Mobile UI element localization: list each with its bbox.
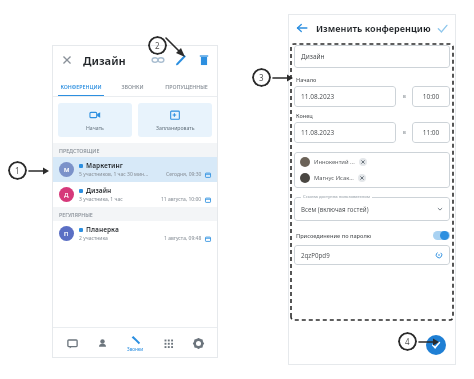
button[interactable]: Save	[436, 22, 449, 35]
button[interactable]: П	[59, 221, 211, 246]
staticText: Всем (включая гостей)	[301, 205, 369, 213]
button[interactable]: 11.08.2023	[294, 122, 396, 143]
button[interactable]: Звонки	[122, 335, 148, 352]
staticText: 2	[155, 40, 160, 51]
button[interactable]: Regenerate password	[435, 251, 443, 259]
staticText: 10:00	[412, 92, 450, 101]
staticText: Маркетинг	[86, 161, 123, 170]
staticText: КОНФЕРЕНЦИИ	[60, 83, 102, 90]
staticText: Дизайн	[83, 53, 126, 68]
staticText: РЕГУЛЯРНЫЕ	[59, 211, 93, 218]
button[interactable]: Дизайн	[294, 45, 450, 68]
staticText: ЗВОНКИ	[121, 83, 144, 90]
staticText: Д	[64, 191, 69, 199]
staticText: 11:00	[412, 128, 450, 137]
staticText: Изменить конференцию	[316, 22, 431, 34]
button[interactable]: Edit	[174, 53, 188, 67]
staticText: 2 участника	[79, 235, 108, 242]
button[interactable]: Confirm	[426, 335, 446, 355]
staticText: Начать	[86, 124, 104, 131]
staticText: в	[403, 129, 406, 136]
button[interactable]: Remove participant	[359, 158, 367, 166]
button[interactable]: Copy link	[151, 53, 165, 67]
button[interactable]: Settings	[187, 332, 209, 354]
button[interactable]: Back	[295, 21, 309, 35]
button[interactable]: 10:00	[412, 86, 450, 107]
staticText: П	[64, 230, 69, 238]
staticText: 3	[259, 72, 264, 83]
button[interactable]: ЗВОНКИ	[109, 75, 155, 97]
button[interactable]: 2qzP0pd9	[294, 245, 450, 265]
staticText: М	[64, 166, 70, 174]
button[interactable]: Иннокентий ...	[294, 152, 450, 188]
button[interactable]: Close	[59, 52, 75, 68]
staticText: 11 августа, 10:00	[161, 196, 202, 203]
staticText: Звонки	[127, 346, 144, 352]
button[interactable]: Chats	[61, 332, 83, 354]
button[interactable]: Д	[59, 182, 211, 207]
staticText: ПРЕДСТОЯЩИЕ	[59, 147, 100, 154]
staticText: 4	[405, 336, 410, 347]
staticText: Дизайн	[86, 186, 112, 195]
button[interactable]: КОНФЕРЕНЦИИ	[52, 75, 109, 97]
button[interactable]: Всем (включая гостей)	[294, 197, 450, 221]
staticText: Присоединение по паролю	[296, 232, 372, 240]
button[interactable]: Remove participant	[358, 174, 366, 182]
staticText: Иннокентий ...	[314, 158, 355, 166]
button[interactable]: Delete	[197, 53, 211, 67]
staticText: Запланировать	[156, 124, 195, 131]
staticText: Начало	[296, 76, 317, 83]
button[interactable]: Keypad	[157, 332, 179, 354]
button[interactable]: Начать	[58, 103, 132, 137]
staticText: ПРОПУЩЕННЫЕ	[165, 83, 208, 90]
staticText: 11.08.2023	[301, 128, 335, 137]
button[interactable]: М	[59, 157, 211, 182]
button[interactable]: ПРОПУЩЕННЫЕ	[155, 75, 218, 97]
staticText: 11.08.2023	[301, 92, 335, 101]
staticText: 3 участника, 1 час	[79, 196, 123, 203]
staticText: Дизайн	[301, 52, 325, 61]
staticText: Магнус Исак...	[314, 174, 354, 182]
staticText: Планерка	[86, 225, 119, 234]
button[interactable]: Запланировать	[138, 103, 212, 137]
button[interactable]: Присоединение по паролю	[294, 231, 450, 240]
staticText: 1	[15, 165, 20, 176]
staticText: 5 участников, 1 час 30 мин...	[79, 171, 149, 178]
staticText: Конец	[296, 112, 313, 119]
button[interactable]: 11.08.2023	[294, 86, 396, 107]
button[interactable]: 11:00	[412, 122, 450, 143]
button[interactable]: Contacts	[91, 332, 113, 354]
staticText: Сегодня, 09:30	[166, 171, 202, 178]
staticText: 1 августа, 09:48	[164, 235, 202, 242]
staticText: Ссылка доступна пользователям	[303, 194, 370, 200]
staticText: в	[403, 93, 406, 100]
staticText: 2qzP0pd9	[301, 251, 330, 259]
